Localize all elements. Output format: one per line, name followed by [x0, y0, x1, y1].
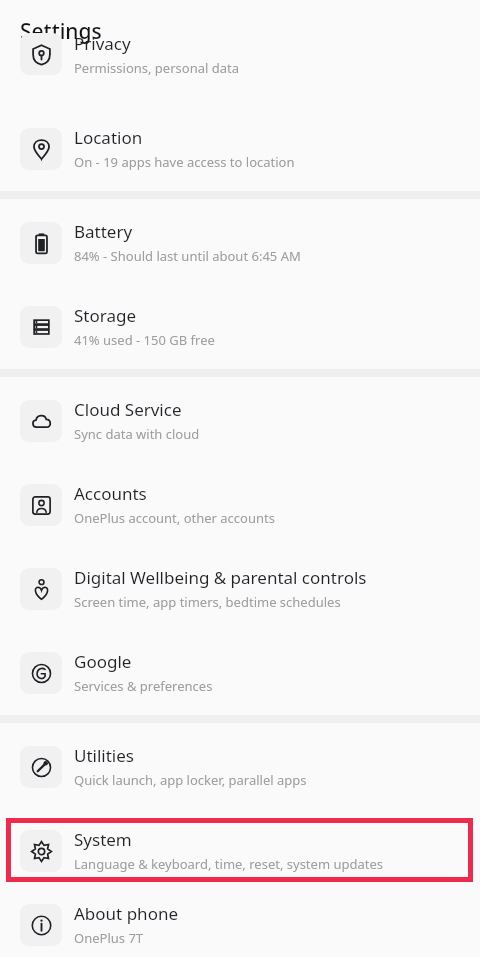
- button[interactable]: Privacy: [0, 62, 480, 106]
- staticText: About phone: [74, 902, 179, 925]
- staticText: Storage: [74, 304, 137, 327]
- staticText: OnePlus 7T: [74, 929, 144, 947]
- button[interactable]: Accounts: [0, 462, 480, 546]
- staticText: Google: [74, 650, 132, 673]
- staticText: On - 19 apps have access to location: [74, 153, 295, 171]
- staticText: Cloud Service: [74, 398, 182, 421]
- button[interactable]: Location: [0, 106, 480, 190]
- button[interactable]: About phone: [0, 892, 480, 957]
- staticText: OnePlus account, other accounts: [74, 509, 275, 527]
- button[interactable]: System: [0, 808, 480, 892]
- staticText: Location: [74, 126, 143, 149]
- button[interactable]: Cloud Service: [0, 378, 480, 462]
- staticText: Services & preferences: [74, 677, 213, 695]
- button[interactable]: Battery: [0, 200, 480, 284]
- staticText: Privacy: [74, 32, 131, 55]
- staticText: Battery: [74, 220, 133, 243]
- staticText: Sync data with cloud: [74, 425, 200, 443]
- staticText: Accounts: [74, 482, 147, 505]
- staticText: Utilities: [74, 744, 134, 767]
- button[interactable]: Digital Wellbeing & parental controls: [0, 546, 480, 630]
- staticText: Language & keyboard, time, reset, system…: [74, 855, 383, 873]
- button[interactable]: Utilities: [0, 724, 480, 808]
- button[interactable]: Storage: [0, 284, 480, 368]
- staticText: Quick launch, app locker, parallel apps: [74, 771, 307, 789]
- staticText: System: [74, 828, 132, 851]
- staticText: Screen time, app timers, bedtime schedul…: [74, 593, 341, 611]
- staticText: Settings: [20, 17, 102, 46]
- staticText: 84% - Should last until about 6:45 AM: [74, 247, 301, 265]
- button[interactable]: Google: [0, 630, 480, 714]
- staticText: Digital Wellbeing & parental controls: [74, 566, 367, 589]
- staticText: 41% used - 150 GB free: [74, 331, 215, 349]
- staticText: Permissions, personal data: [74, 59, 239, 76]
